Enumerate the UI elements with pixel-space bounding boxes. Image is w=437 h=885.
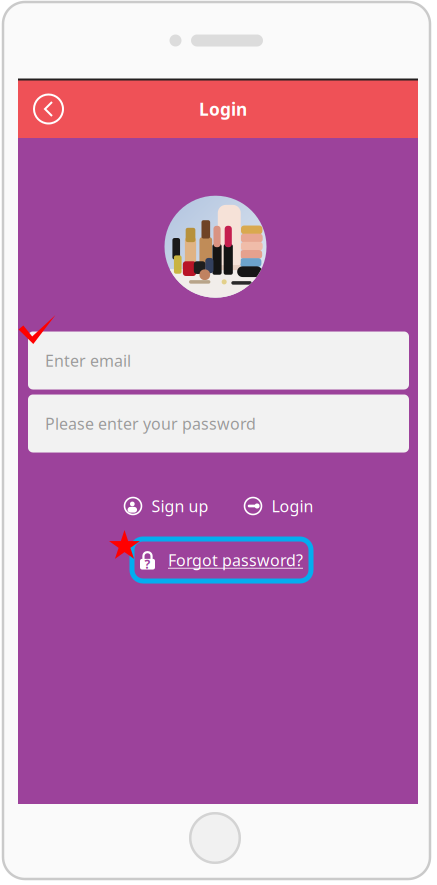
staticText: Login xyxy=(199,97,247,120)
button[interactable]: Sign up xyxy=(124,488,208,524)
staticText: Please enter your password xyxy=(45,413,256,434)
staticText: Forgot password? xyxy=(168,549,303,571)
staticText: Enter email xyxy=(45,350,131,371)
staticText: Sign up xyxy=(151,495,208,517)
button[interactable]: ? xyxy=(129,536,313,583)
button[interactable]: Login xyxy=(244,488,313,524)
staticText: ? xyxy=(144,556,150,572)
staticText: Login xyxy=(271,495,313,517)
button[interactable]: Back xyxy=(26,87,70,131)
